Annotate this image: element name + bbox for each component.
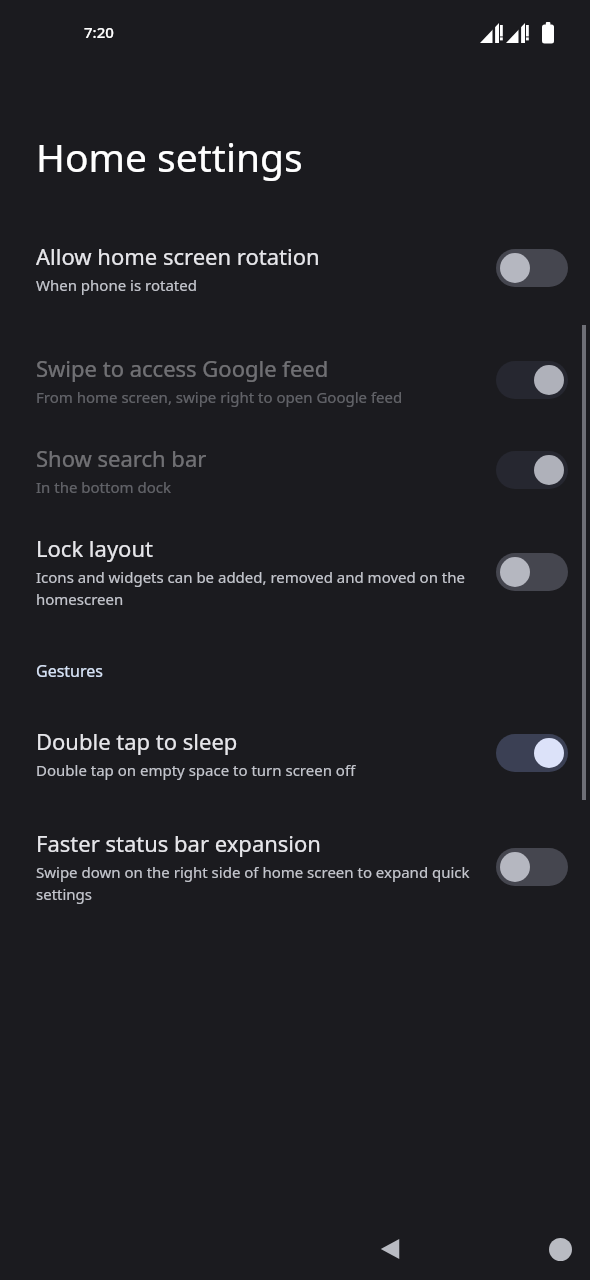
staticText: From home screen, swipe right to open Go… [36,387,403,407]
button[interactable]: Show search bar [0,443,590,497]
button[interactable]: Home [265,1218,590,1280]
button[interactable]: Lock layout [0,533,590,610]
button[interactable]: Allow home screen rotation [0,241,590,295]
staticText: Show search bar [36,443,207,473]
staticText: Allow home screen rotation [36,241,320,271]
staticText: When phone is rotated [36,275,197,295]
button[interactable]: Swipe to access Google feed [0,353,590,407]
staticText: Home settings [36,130,303,183]
staticText: Gestures [36,660,103,682]
staticText: Icons and widgets can be added, removed … [36,567,480,610]
button[interactable]: Recents [434,1218,590,1280]
staticText: Swipe to access Google feed [36,353,329,383]
button[interactable]: Double tap to sleep [0,726,590,780]
staticText: Faster status bar expansion [36,828,321,858]
staticText: 7:20 [84,22,114,42]
staticText: In the bottom dock [36,477,171,497]
staticText: Double tap to sleep [36,726,238,756]
button[interactable]: Faster status bar expansion [0,828,590,905]
staticText: Double tap on empty space to turn screen… [36,760,356,780]
staticText: Swipe down on the right side of home scr… [36,862,480,905]
button[interactable]: Back [95,1218,590,1280]
staticText: Lock layout [36,533,153,563]
